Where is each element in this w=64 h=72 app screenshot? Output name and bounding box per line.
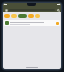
button[interactable]: Menu bbox=[4, 8, 8, 12]
button[interactable]: Action bbox=[56, 22, 59, 25]
button[interactable]: Action bbox=[4, 20, 60, 26]
button[interactable] bbox=[18, 14, 27, 18]
button[interactable] bbox=[11, 14, 17, 18]
button[interactable] bbox=[4, 14, 10, 18]
button[interactable] bbox=[35, 14, 40, 18]
button[interactable] bbox=[28, 14, 34, 18]
button[interactable]: Search bbox=[56, 8, 60, 12]
